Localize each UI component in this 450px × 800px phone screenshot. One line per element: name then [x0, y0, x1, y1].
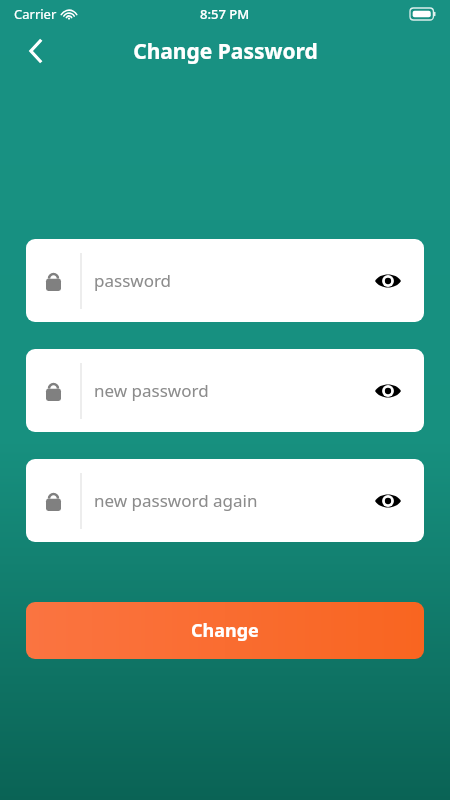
staticText: new password again — [94, 489, 368, 512]
button[interactable]: Change — [26, 602, 424, 659]
button[interactable]: Show password — [368, 261, 408, 301]
staticText: Change Password — [133, 37, 318, 66]
button[interactable]: Back — [12, 28, 60, 74]
staticText: Change — [191, 618, 259, 643]
staticText: 8:57 PM — [200, 5, 250, 23]
button[interactable]: new password again — [26, 459, 424, 542]
button[interactable]: new password — [26, 349, 424, 432]
button[interactable]: Show password — [368, 371, 408, 411]
button[interactable]: Show password — [368, 481, 408, 521]
staticText: new password — [94, 379, 368, 402]
staticText: Carrier — [14, 5, 57, 23]
button[interactable]: password — [26, 239, 424, 322]
staticText: password — [94, 269, 368, 292]
